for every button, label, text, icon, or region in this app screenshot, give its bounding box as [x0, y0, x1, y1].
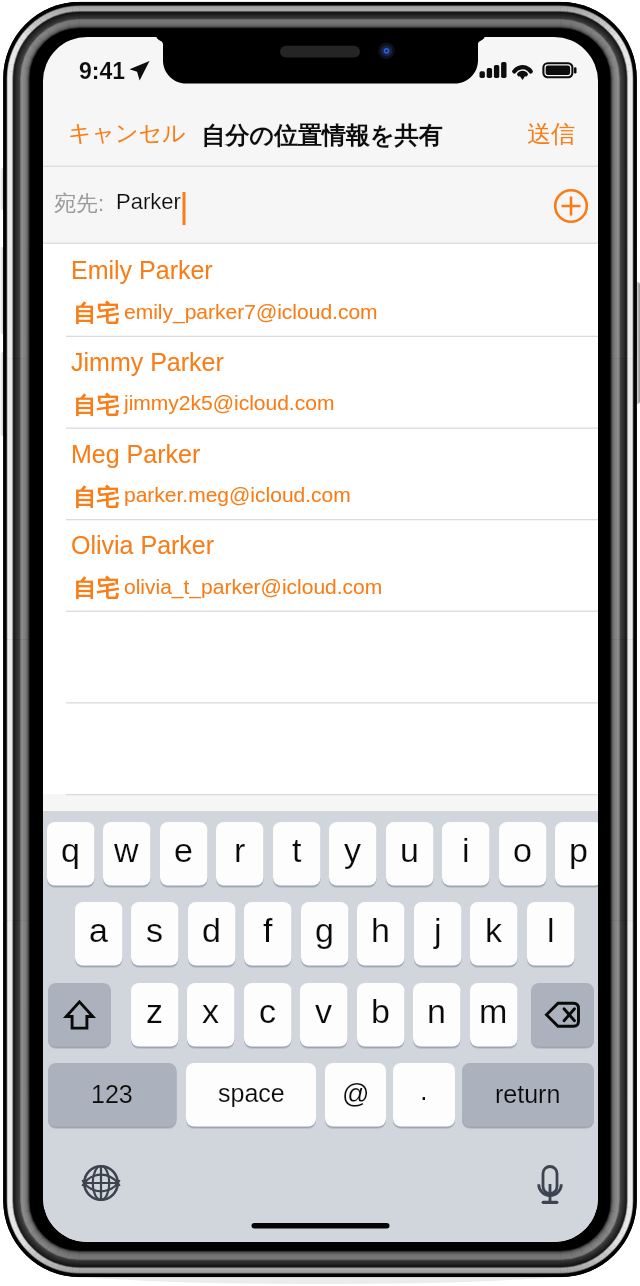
button[interactable]: f — [244, 901, 291, 967]
staticText: p — [569, 831, 588, 869]
staticText: l — [547, 911, 555, 949]
button[interactable]: k — [470, 901, 517, 967]
button[interactable]: c — [244, 982, 291, 1048]
button[interactable]: 123 — [48, 1062, 176, 1128]
staticText: m — [479, 992, 508, 1030]
staticText: v — [315, 992, 332, 1030]
button[interactable]: Switch keyboard — [68, 1150, 134, 1216]
staticText: Meg Parker — [71, 440, 401, 485]
staticText: キャンセル — [68, 119, 198, 160]
button[interactable]: s — [131, 901, 178, 967]
staticText: s — [146, 911, 163, 949]
button[interactable]: d — [188, 901, 235, 967]
button[interactable]: n — [413, 982, 460, 1048]
button[interactable]: キャンセル — [51, 111, 189, 161]
staticText: jimmy2k5@icloud.com — [124, 391, 464, 428]
button[interactable]: return — [462, 1062, 594, 1128]
button[interactable] — [43, 425, 598, 516]
other: Dictate — [517, 1152, 583, 1218]
staticText: @ — [342, 1079, 370, 1109]
button[interactable]: z — [131, 982, 178, 1048]
staticText: t — [292, 831, 302, 869]
staticText: 自宅 — [73, 391, 133, 432]
staticText: a — [89, 911, 108, 949]
button[interactable]: 送信 — [515, 111, 587, 161]
staticText: o — [513, 831, 532, 869]
staticText: emily_parker7@icloud.com — [124, 300, 464, 337]
staticText: space — [218, 1079, 285, 1107]
button[interactable]: b — [357, 982, 404, 1048]
staticText: h — [371, 911, 390, 949]
button[interactable]: i — [442, 821, 489, 887]
staticText: return — [495, 1080, 561, 1108]
staticText: q — [61, 831, 80, 869]
button[interactable]: space — [186, 1062, 316, 1128]
button[interactable]: j — [414, 901, 461, 967]
button[interactable]: Shift — [48, 982, 111, 1048]
staticText: 9:41 — [79, 58, 149, 99]
button[interactable]: Add contact — [537, 172, 598, 240]
staticText: Olivia Parker — [71, 531, 401, 576]
staticText: parker.meg@icloud.com — [124, 483, 464, 520]
staticText: 自宅 — [73, 574, 133, 615]
staticText: y — [344, 831, 361, 869]
button[interactable]: q — [47, 821, 94, 887]
button[interactable]: Backspace — [531, 982, 594, 1048]
staticText: . — [420, 1076, 428, 1106]
button[interactable] — [43, 242, 598, 333]
staticText: i — [462, 831, 470, 869]
button[interactable]: u — [386, 821, 433, 887]
button[interactable]: e — [160, 821, 207, 887]
staticText: x — [202, 992, 219, 1030]
staticText: r — [234, 831, 246, 869]
staticText: k — [485, 911, 502, 949]
staticText: 123 — [91, 1080, 133, 1108]
staticText: g — [315, 911, 334, 949]
button[interactable]: t — [273, 821, 320, 887]
staticText: 送信 — [527, 119, 587, 162]
button[interactable]: x — [187, 982, 234, 1048]
staticText: j — [434, 911, 442, 949]
button[interactable]: r — [216, 821, 263, 887]
button[interactable]: p — [555, 821, 598, 887]
staticText: 自宅 — [73, 483, 133, 524]
staticText: 自宅 — [73, 299, 133, 340]
staticText: Emily Parker — [71, 256, 401, 301]
button[interactable]: y — [329, 821, 376, 887]
button[interactable]: m — [470, 982, 517, 1048]
button[interactable]: l — [527, 901, 574, 967]
other: Add contact — [537, 172, 598, 240]
staticText: w — [114, 831, 139, 869]
button[interactable]: @ — [325, 1062, 386, 1128]
button[interactable]: w — [103, 821, 150, 887]
staticText: f — [263, 911, 273, 949]
staticText: d — [202, 911, 221, 949]
button[interactable]: o — [499, 821, 546, 887]
staticText: c — [259, 992, 276, 1030]
other: Switch keyboard — [68, 1150, 134, 1216]
staticText: Jimmy Parker — [71, 348, 401, 393]
staticText: 宛先: — [54, 190, 124, 229]
staticText: Parker — [116, 189, 246, 228]
button[interactable]: . — [393, 1062, 455, 1128]
button[interactable] — [43, 517, 598, 608]
staticText: u — [400, 831, 419, 869]
staticText: b — [371, 992, 390, 1030]
button[interactable]: a — [75, 901, 122, 967]
staticText: 自分の位置情報を共有 — [201, 121, 445, 164]
staticText: z — [146, 992, 163, 1030]
button[interactable] — [43, 334, 598, 425]
button[interactable]: g — [301, 901, 348, 967]
button[interactable]: v — [300, 982, 347, 1048]
staticText: n — [427, 992, 446, 1030]
button[interactable]: h — [357, 901, 404, 967]
staticText: olivia_t_parker@icloud.com — [124, 575, 464, 612]
button[interactable]: Dictate — [517, 1152, 583, 1218]
staticText: e — [174, 831, 193, 869]
